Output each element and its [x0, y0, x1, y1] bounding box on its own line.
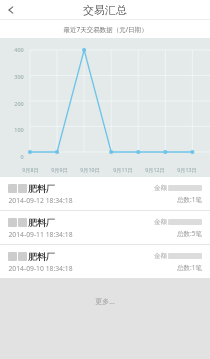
staticText: 总数:1笔 [177, 263, 202, 272]
staticText: 100 [14, 126, 24, 133]
button[interactable]: 肥料厂 [0, 245, 210, 278]
staticText: 9月9日 [51, 166, 68, 173]
staticText: 300 [14, 73, 24, 80]
staticText: 0 [20, 153, 24, 160]
staticText: 9月13日 [177, 166, 197, 173]
staticText: 最近7天交易数据（元/日期） [63, 25, 148, 34]
staticText: 肥料厂 [28, 183, 55, 194]
button[interactable]: 肥料厂 [0, 177, 210, 210]
staticText: 金额 [154, 252, 167, 260]
staticText: 400 [14, 46, 24, 53]
button[interactable]: Back [0, 0, 22, 20]
staticText: 9月12日 [145, 166, 165, 173]
staticText: 更多... [95, 297, 115, 307]
staticText: 200 [14, 100, 24, 107]
staticText: 交易汇总 [83, 3, 127, 17]
staticText: 2014-09-11 18:34:18 [8, 230, 73, 239]
staticText: 金额 [154, 218, 167, 226]
staticText: 9月11日 [113, 166, 133, 173]
staticText: 2014-09-12 18:34:18 [8, 196, 73, 205]
staticText: 总数:5笔 [177, 229, 202, 238]
staticText: 9月8日 [22, 166, 39, 173]
staticText: 2014-09-10 18:34:18 [8, 264, 73, 273]
staticText: 肥料厂 [28, 217, 55, 228]
staticText: 肥料厂 [28, 251, 55, 262]
staticText: 金额 [154, 184, 167, 192]
button[interactable]: 肥料厂 [0, 211, 210, 244]
staticText: 总数:1笔 [177, 195, 202, 204]
staticText: 9月10日 [80, 166, 100, 173]
